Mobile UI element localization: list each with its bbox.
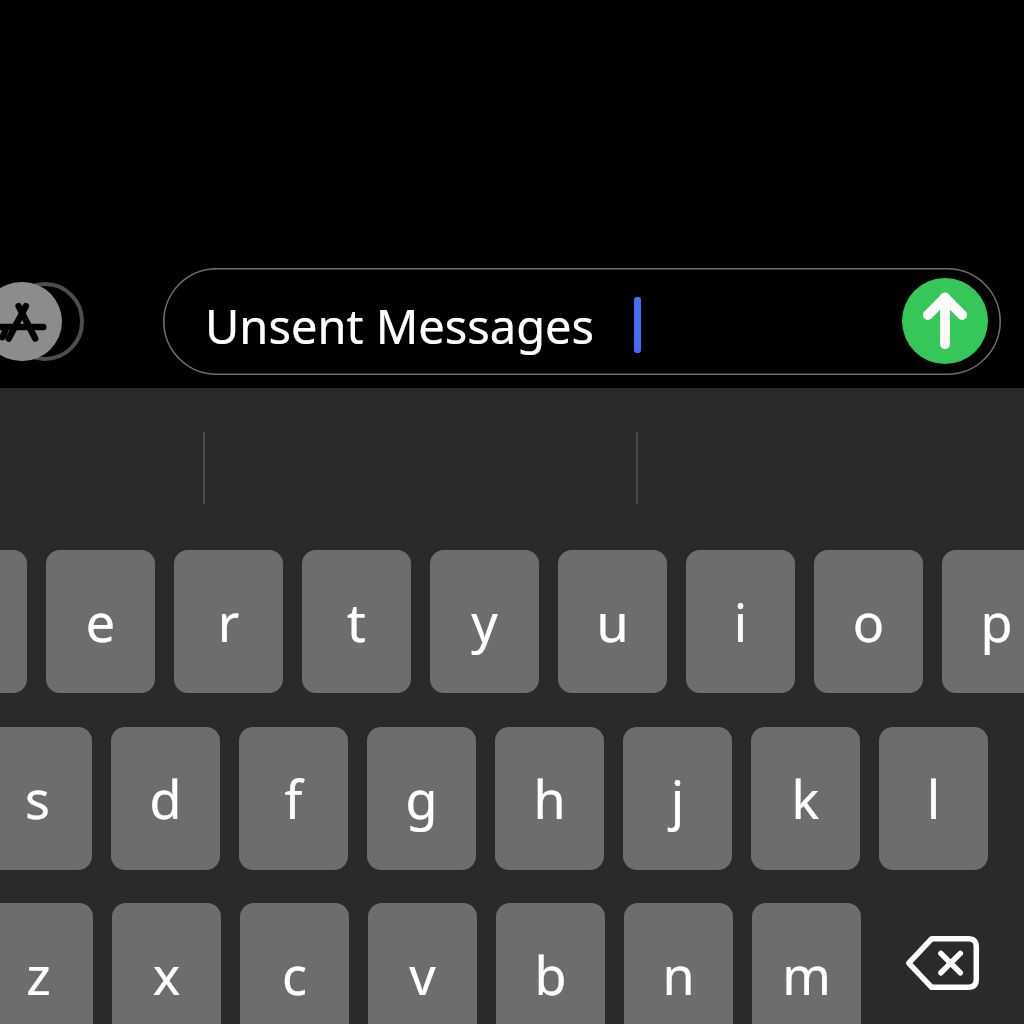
staticText: t [302,586,411,657]
staticText: h [495,763,604,834]
button[interactable] [163,268,1001,375]
staticText: f [239,763,348,834]
staticText: n [624,939,733,1010]
button[interactable]: c [240,903,349,1024]
button[interactable]: s [0,727,92,870]
staticText: o [814,586,923,657]
staticText: v [368,939,477,1010]
staticText: i [686,586,795,657]
staticText: m [752,939,861,1010]
staticText: y [430,586,539,657]
staticText: b [496,939,605,1010]
button[interactable]: b [496,903,605,1024]
button[interactable]: o [814,550,923,693]
button[interactable]: l [879,727,988,870]
button[interactable]: k [751,727,860,870]
button[interactable]: x [112,903,221,1024]
button[interactable]: Send [902,278,988,364]
staticText: k [751,763,860,834]
button[interactable]: App Store [0,282,82,361]
button[interactable]: g [367,727,476,870]
button[interactable]: w [0,550,27,693]
button[interactable]: n [624,903,733,1024]
button[interactable]: j [623,727,732,870]
staticText: x [112,939,221,1010]
staticText: c [240,939,349,1010]
button[interactable]: f [239,727,348,870]
button[interactable]: r [174,550,283,693]
button[interactable]: i [686,550,795,693]
staticText: p [942,586,1024,657]
button[interactable]: m [752,903,861,1024]
staticText: z [0,939,93,1010]
button[interactable]: z [0,903,93,1024]
button[interactable]: u [558,550,667,693]
staticText: l [879,763,988,834]
button[interactable]: y [430,550,539,693]
button[interactable]: p [942,550,1024,693]
button[interactable]: v [368,903,477,1024]
staticText: j [623,763,732,834]
button[interactable]: Backspace [888,903,997,1024]
staticText: u [558,586,667,657]
button[interactable]: h [495,727,604,870]
staticText: d [111,763,220,834]
staticText: e [46,586,155,657]
button[interactable]: t [302,550,411,693]
staticText: Unsent Messages [205,294,595,358]
button[interactable]: d [111,727,220,870]
button[interactable]: e [46,550,155,693]
staticText: r [174,586,283,657]
staticText: g [367,763,476,834]
staticText: s [0,763,92,834]
